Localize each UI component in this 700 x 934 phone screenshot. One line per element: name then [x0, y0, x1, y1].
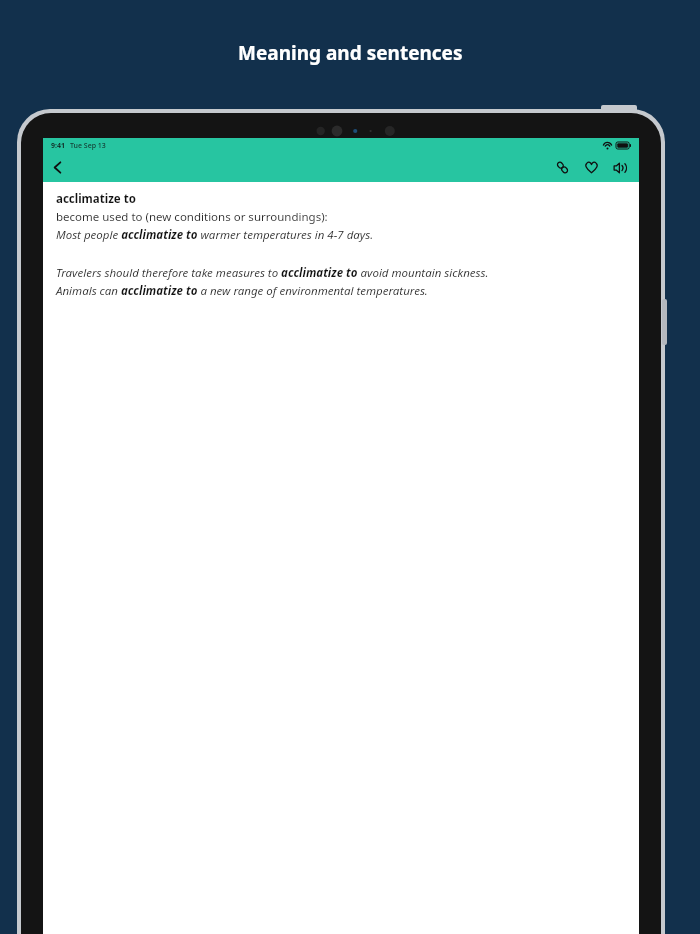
staticText: become used to (new conditions or surrou…	[56, 209, 328, 225]
button[interactable]: Back	[43, 153, 72, 182]
staticText: Animals can acclimatize to a new range o…	[56, 283, 428, 299]
button[interactable]: Favorite	[577, 153, 606, 182]
staticText: Meaning and sentences	[238, 40, 463, 66]
staticText: Travelers should therefore take measures…	[56, 265, 489, 281]
staticText: 9:41	[51, 141, 65, 151]
staticText: Most people acclimatize to warmer temper…	[56, 227, 374, 243]
button[interactable]: Play pronunciation	[606, 153, 635, 182]
button[interactable]: Copy link	[548, 153, 577, 182]
staticText: acclimatize to	[56, 191, 136, 207]
staticText: Tue Sep 13	[70, 141, 106, 151]
